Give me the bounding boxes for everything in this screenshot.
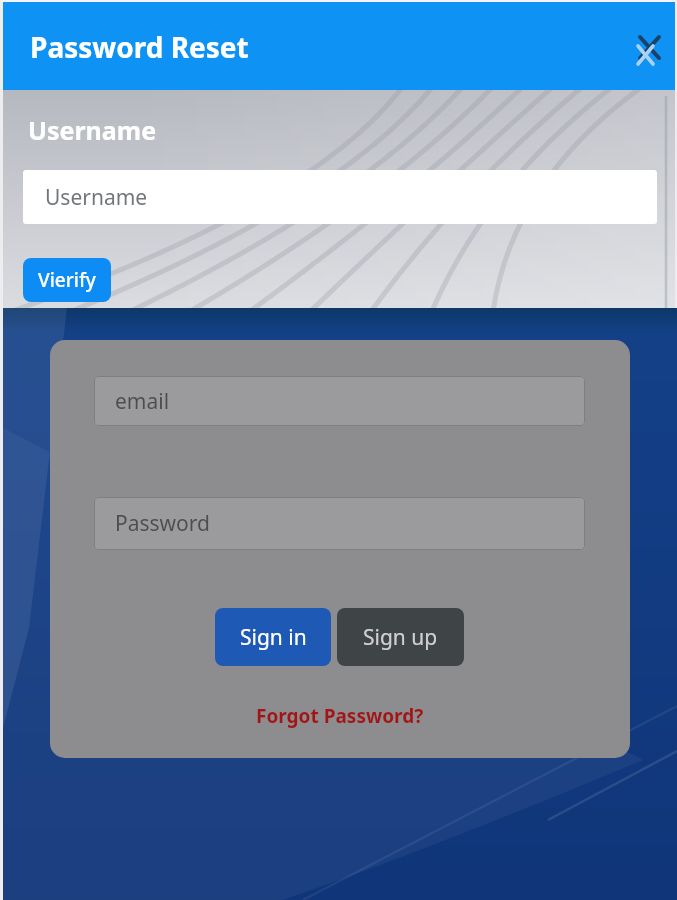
staticText: Password Reset — [30, 28, 249, 66]
staticText: Username — [28, 113, 157, 147]
button[interactable]: Sign up — [337, 608, 464, 666]
staticText: Password — [115, 509, 210, 538]
button[interactable]: email — [94, 376, 585, 426]
button[interactable]: Username — [23, 170, 657, 224]
staticText: Username — [45, 183, 148, 212]
button[interactable]: Sign in — [215, 608, 331, 666]
staticText: Sign up — [363, 623, 438, 652]
staticText: Sign in — [240, 623, 307, 652]
button[interactable]: Vierify — [23, 258, 111, 302]
button[interactable]: Forgot Password? — [256, 703, 424, 729]
staticText: Vierify — [38, 267, 96, 293]
button[interactable] — [630, 33, 666, 69]
button[interactable]: Password — [94, 497, 585, 550]
staticText: email — [115, 387, 170, 416]
